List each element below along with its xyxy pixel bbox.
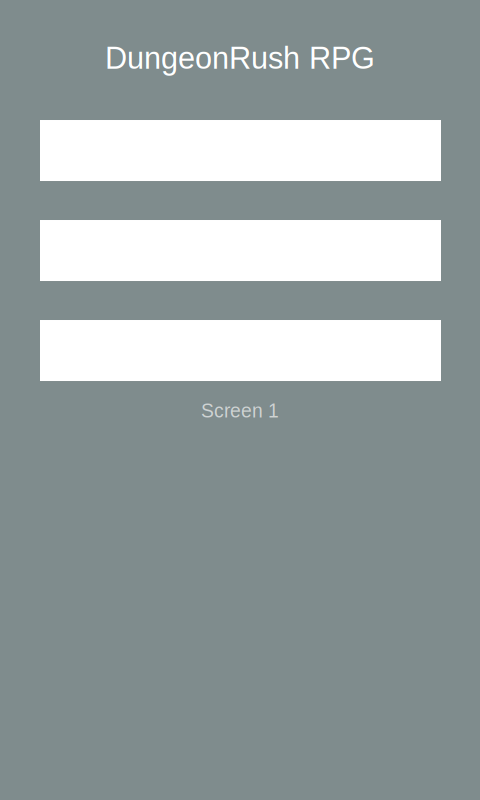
staticText: DungeonRush RPG: [105, 41, 375, 75]
staticText: Screen 1: [201, 400, 279, 422]
